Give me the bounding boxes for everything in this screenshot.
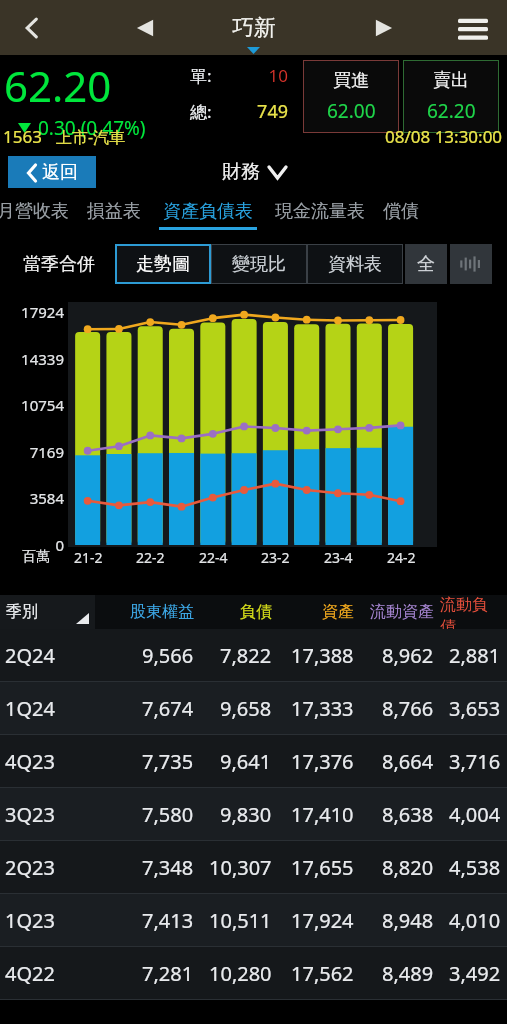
button[interactable]: 3Q23 (0, 788, 507, 840)
staticText: 23-2 (261, 548, 290, 567)
staticText: 1563 (3, 125, 42, 148)
staticText: 2Q23 (5, 854, 55, 881)
button[interactable]: 走勢圖 (115, 244, 211, 284)
staticText: 4,004 (449, 801, 501, 828)
staticText: 買進 (333, 69, 369, 92)
button[interactable]: 買進 (303, 60, 399, 133)
staticText: 流動資產 (370, 602, 434, 622)
staticText: 08/08 13:30:00 (385, 125, 503, 148)
staticText: 17,388 (291, 642, 354, 669)
button[interactable]: 當季合併 (6, 244, 111, 284)
staticText: 3,653 (449, 695, 501, 722)
button[interactable]: 變現比 (211, 244, 307, 284)
staticText: 巧新 (232, 14, 276, 42)
staticText: 749 (212, 99, 288, 124)
staticText: 現金流量表 (275, 200, 365, 223)
staticText: 24-2 (387, 548, 416, 567)
staticText: 62.20 (427, 98, 476, 124)
button[interactable]: 返回 (8, 156, 96, 188)
staticText: 0 (55, 535, 64, 555)
staticText: 22-4 (199, 548, 228, 567)
button[interactable]: 季別 (0, 595, 95, 629)
staticText: 季別 (6, 602, 38, 622)
staticText: 7,281 (142, 960, 194, 987)
staticText: 7,413 (142, 907, 194, 934)
staticText: 流動負債 (440, 595, 501, 629)
button[interactable]: 4Q22 (0, 947, 507, 999)
staticText: 62.00 (327, 98, 376, 124)
staticText: 14339 (21, 349, 64, 369)
button[interactable]: 資產 (278, 595, 360, 629)
button[interactable]: Previous (120, 3, 170, 53)
staticText: 8,664 (382, 748, 434, 775)
staticText: 7169 (29, 442, 64, 462)
button[interactable]: 2Q24 (0, 629, 507, 681)
staticText: 資料表 (328, 253, 382, 276)
staticText: 資產負債表 (163, 200, 253, 223)
staticText: 返回 (42, 161, 78, 184)
staticText: 17,333 (291, 695, 354, 722)
staticText: 7,822 (220, 642, 272, 669)
staticText: 7,580 (142, 801, 194, 828)
staticText: 8,766 (382, 695, 434, 722)
button[interactable]: 償債 (383, 193, 419, 237)
staticText: 4Q22 (5, 960, 55, 987)
staticText: 9,658 (220, 695, 272, 722)
staticText: 8,638 (382, 801, 434, 828)
staticText: 損益表 (87, 200, 141, 223)
staticText: 3,716 (449, 748, 501, 775)
button[interactable]: 1Q23 (0, 894, 507, 946)
staticText: 8,948 (382, 907, 434, 934)
staticText: 9,641 (220, 748, 272, 775)
button[interactable]: 月營收表 (0, 193, 69, 237)
button[interactable]: 4Q23 (0, 735, 507, 787)
staticText: 22-2 (136, 548, 165, 567)
staticText: 7,735 (142, 748, 194, 775)
staticText: 17,562 (291, 960, 354, 987)
staticText: 當季合併 (23, 253, 95, 276)
staticText: 2Q24 (5, 642, 55, 669)
button[interactable]: Next (359, 3, 409, 53)
staticText: 1Q23 (5, 907, 55, 934)
staticText: 17,655 (291, 854, 354, 881)
staticText: 10,280 (209, 960, 272, 987)
staticText: 百萬 (22, 548, 50, 566)
button[interactable]: Chart settings (450, 244, 492, 284)
staticText: 股東權益 (130, 602, 194, 622)
button[interactable]: 賣出 (403, 60, 499, 133)
button[interactable]: Back (6, 2, 58, 54)
staticText: 9,566 (142, 642, 194, 669)
button[interactable]: Menu (447, 2, 499, 54)
staticText: 21-2 (74, 548, 103, 567)
staticText: 4,538 (449, 854, 501, 881)
staticText: 17,376 (291, 748, 354, 775)
button[interactable]: 1Q24 (0, 682, 507, 734)
staticText: 賣出 (433, 69, 469, 92)
staticText: 7,674 (142, 695, 194, 722)
staticText: 1Q24 (5, 695, 55, 722)
button[interactable]: 負債 (200, 595, 278, 629)
staticText: 7,348 (142, 854, 194, 881)
button[interactable]: 全 (405, 244, 447, 284)
staticText: 3Q23 (5, 801, 55, 828)
button[interactable]: 損益表 (87, 193, 141, 237)
staticText: 資產 (322, 602, 354, 622)
staticText: 財務 (222, 160, 260, 184)
button[interactable]: 資料表 (307, 244, 403, 284)
button[interactable]: 2Q23 (0, 841, 507, 893)
button[interactable]: 流動負債 (440, 595, 507, 629)
staticText: 總: (190, 100, 212, 123)
button[interactable]: 財務 (222, 160, 286, 184)
button[interactable]: 資產負債表 (159, 193, 257, 237)
staticText: 4Q23 (5, 748, 55, 775)
staticText: 負債 (240, 602, 272, 622)
staticText: 9,830 (220, 801, 272, 828)
staticText: 上市-汽車 (56, 126, 126, 148)
button[interactable]: 現金流量表 (275, 193, 365, 237)
staticText: 2,881 (449, 642, 501, 669)
staticText: 17,924 (291, 907, 354, 934)
button[interactable]: 流動資產 (360, 595, 440, 629)
staticText: 8,820 (382, 854, 434, 881)
button[interactable]: 股東權益 (95, 595, 200, 629)
staticText: 變現比 (232, 253, 286, 276)
